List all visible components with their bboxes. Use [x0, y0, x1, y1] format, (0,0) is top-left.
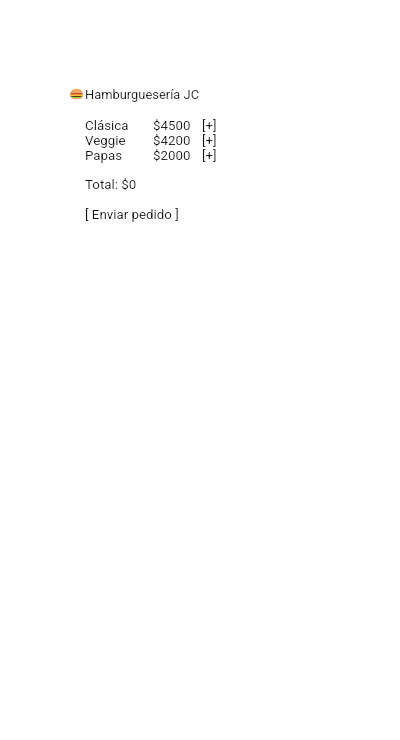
staticText: $4200 [153, 133, 191, 148]
staticText: $2000 [153, 148, 191, 163]
staticText: [+] [202, 148, 217, 163]
button[interactable]: Agregar Veggie [202, 133, 217, 148]
button[interactable]: Agregar Papas [202, 148, 217, 163]
button[interactable]: [ Enviar pedido ] [85, 207, 179, 223]
staticText: Veggie [85, 133, 126, 148]
staticText: [+] [202, 133, 217, 148]
other: Hamburguesería [70, 87, 83, 100]
staticText: Total: $0 [85, 177, 137, 193]
staticText: Hamburguesería JC [85, 87, 200, 102]
staticText: Clásica [85, 118, 129, 133]
staticText: [+] [202, 118, 217, 133]
staticText: Papas [85, 148, 123, 163]
button[interactable]: Agregar Clásica [202, 118, 217, 133]
staticText: [ Enviar pedido ] [85, 207, 179, 223]
staticText: $4500 [153, 118, 191, 133]
